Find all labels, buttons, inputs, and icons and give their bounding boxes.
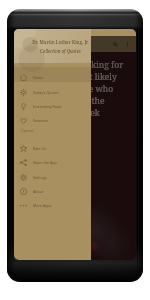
button[interactable]: Favorites (14, 113, 91, 127)
staticText: Dr. Martin Luther King, Jr. (32, 39, 89, 45)
button[interactable]: Interesting Facts (14, 99, 91, 113)
button[interactable]: Rate Us (14, 141, 91, 155)
staticText: Options (21, 128, 34, 133)
staticText: Today's Quotes (33, 90, 59, 95)
staticText: Home (33, 75, 44, 80)
staticText: Favorites (33, 118, 49, 123)
staticText: Share the App (33, 160, 57, 165)
button[interactable]: More Apps (14, 198, 91, 212)
button[interactable]: More options (122, 39, 133, 50)
staticText: Interesting Facts (33, 104, 62, 109)
button[interactable]: Settings (14, 170, 91, 184)
button[interactable]: Search (108, 37, 122, 51)
staticText: Collection of Quotes (40, 48, 81, 54)
button[interactable]: About (14, 184, 91, 198)
staticText: Rate Us (33, 146, 46, 151)
staticText: Settings (33, 175, 47, 180)
staticText: More Apps (33, 203, 52, 208)
staticText: About (33, 189, 44, 194)
button[interactable]: Share the App (14, 155, 91, 169)
button[interactable]: Home (14, 70, 91, 84)
button[interactable]: Today's Quotes (14, 85, 91, 99)
staticText: Everybody is looking for results. It is … (24, 59, 124, 119)
